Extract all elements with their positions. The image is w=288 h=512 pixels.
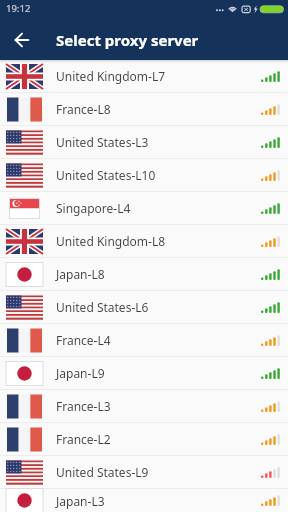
button[interactable]: United Kingdom-L8 bbox=[0, 225, 288, 257]
button[interactable]: France-L4 bbox=[0, 324, 288, 356]
staticText: 19:12 bbox=[6, 2, 31, 15]
staticText: Japan-L8 bbox=[56, 266, 105, 282]
button[interactable]: United Kingdom-L7 bbox=[0, 60, 288, 92]
staticText: United Kingdom-L7 bbox=[56, 68, 166, 84]
button[interactable]: France-L2 bbox=[0, 423, 288, 455]
staticText: France-L4 bbox=[56, 332, 111, 348]
button[interactable]: United States-L6 bbox=[0, 291, 288, 323]
button[interactable] bbox=[0, 19, 44, 60]
staticText: Select proxy server bbox=[56, 30, 199, 50]
button[interactable]: Japan-L9 bbox=[0, 357, 288, 389]
button[interactable]: Japan-L8 bbox=[0, 258, 288, 290]
button[interactable]: France-L8 bbox=[0, 93, 288, 125]
staticText: France-L8 bbox=[56, 101, 111, 117]
button[interactable]: Singapore-L4 bbox=[0, 192, 288, 224]
staticText: United States-L6 bbox=[56, 299, 149, 315]
staticText: United Kingdom-L8 bbox=[56, 233, 166, 249]
staticText: France-L2 bbox=[56, 431, 111, 447]
staticText: Japan-L9 bbox=[56, 365, 105, 381]
staticText: Singapore-L4 bbox=[56, 200, 131, 216]
button[interactable]: United States-L3 bbox=[0, 126, 288, 158]
staticText: United States-L3 bbox=[56, 134, 149, 150]
button[interactable]: Japan-L3 bbox=[0, 489, 288, 512]
staticText: France-L3 bbox=[56, 398, 111, 414]
button[interactable]: United States-L10 bbox=[0, 159, 288, 191]
staticText: United States-L10 bbox=[56, 167, 156, 183]
staticText: United States-L9 bbox=[56, 464, 149, 480]
staticText: Japan-L3 bbox=[56, 493, 105, 509]
button[interactable]: France-L3 bbox=[0, 390, 288, 422]
button[interactable]: United States-L9 bbox=[0, 456, 288, 488]
